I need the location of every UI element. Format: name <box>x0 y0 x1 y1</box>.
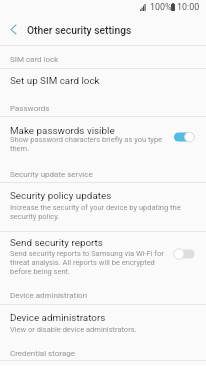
staticText: Make passwords visible <box>10 125 115 137</box>
staticText: Credential storage <box>10 349 75 358</box>
staticText: SIM card lock <box>10 55 59 64</box>
staticText: 10:00 <box>177 2 200 12</box>
staticText: Security policy updates <box>10 190 112 202</box>
staticText: Device administrators <box>10 312 106 324</box>
button[interactable] <box>0 304 206 338</box>
staticText: Send security reports <box>10 237 103 249</box>
staticText: Security update service <box>10 170 93 179</box>
staticText: Show password characters briefly as you … <box>10 135 165 153</box>
staticText: Send security reports to Samsung via Wi-… <box>10 249 165 276</box>
button[interactable] <box>0 68 206 92</box>
button[interactable] <box>0 231 206 281</box>
button[interactable]: Switch on <box>171 129 197 145</box>
button[interactable] <box>0 182 206 222</box>
staticText: 100% <box>150 2 172 12</box>
button[interactable] <box>0 117 206 157</box>
staticText: View or disable device administrators. <box>10 325 190 334</box>
button[interactable]: Navigate up <box>1 17 25 41</box>
staticText: Increase the security of your device by … <box>10 203 190 221</box>
button[interactable]: Switch off <box>171 246 197 262</box>
staticText: Passwords <box>10 104 50 113</box>
staticText: Other security settings <box>27 24 132 36</box>
staticText: Device administration <box>10 291 88 300</box>
staticText: Set up SIM card lock <box>10 75 100 87</box>
